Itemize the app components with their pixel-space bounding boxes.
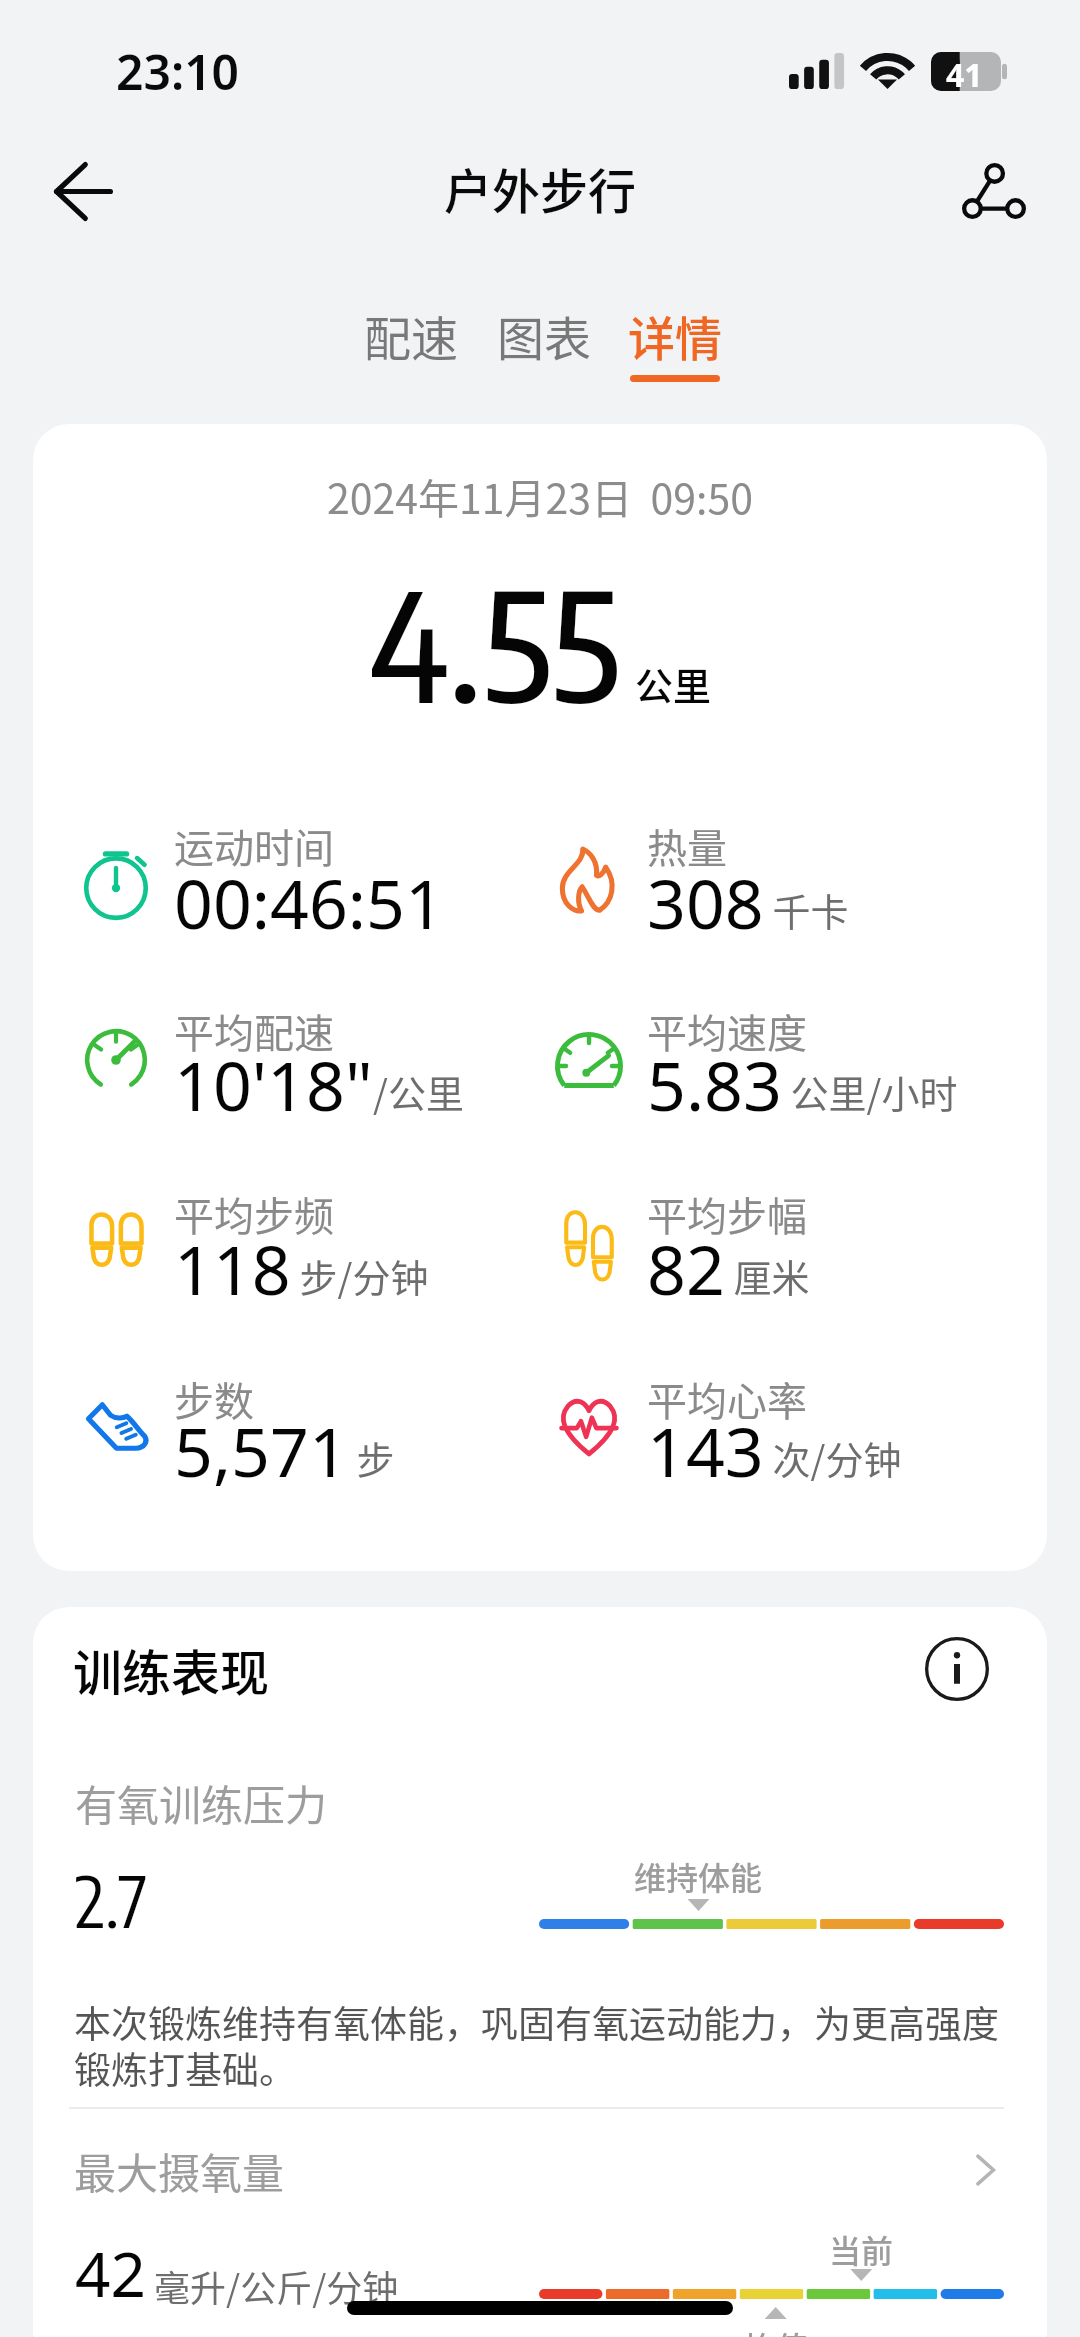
staticText: 本次锻炼维持有氧体能，巩固有氧运动能力，为更高强度锻炼打基础。 xyxy=(74,1995,1029,2095)
staticText: 步数 xyxy=(174,1370,254,1428)
staticText: 41 xyxy=(946,53,983,92)
staticText: 步/分钟 xyxy=(291,1248,429,1303)
staticText: 23:10 xyxy=(116,39,240,104)
staticText: 42 xyxy=(75,2231,146,2315)
staticText: 5.83 xyxy=(647,1038,782,1131)
staticText: 82 xyxy=(647,1222,725,1315)
staticText: 308 xyxy=(647,856,764,949)
staticText: 户外步行 xyxy=(444,153,637,223)
staticText: /公里 xyxy=(373,1064,464,1119)
staticText: 训练表现 xyxy=(73,1634,270,1705)
staticText: 平均配速 xyxy=(174,1002,334,1060)
button[interactable]: 最大摄氧量 xyxy=(74,2135,1006,2205)
staticText: 热量 xyxy=(647,817,727,875)
button[interactable]: 图表 xyxy=(479,291,609,392)
staticText: 配速 xyxy=(364,301,458,369)
staticText: 运动时间 xyxy=(174,817,334,875)
staticText: 最大摄氧量 xyxy=(74,2140,285,2201)
staticText: 平均步频 xyxy=(174,1185,334,1243)
staticText: 公里/小时 xyxy=(782,1064,958,1119)
staticText: 厘米 xyxy=(725,1248,810,1303)
staticText: 平均速度 xyxy=(647,1002,807,1060)
staticText: 平均步幅 xyxy=(647,1185,807,1243)
staticText: 4.55 xyxy=(369,548,621,736)
staticText: 详情 xyxy=(628,301,722,369)
staticText: 步 xyxy=(348,1430,395,1485)
staticText: 5,571 xyxy=(174,1404,348,1497)
button[interactable]: Back xyxy=(36,144,130,238)
staticText: 10'18" xyxy=(174,1038,373,1131)
staticText: 千卡 xyxy=(764,882,849,937)
staticText: 维持体能 xyxy=(608,1853,788,1899)
staticText: 118 xyxy=(174,1222,291,1315)
staticText: 143 xyxy=(647,1404,764,1497)
staticText: 毫升/公斤/分钟 xyxy=(146,2260,399,2312)
staticText: 当前 xyxy=(771,2226,951,2272)
staticText: 次/分钟 xyxy=(764,1430,902,1485)
staticText: 有氧训练压力 xyxy=(75,1772,328,1833)
staticText: 00:46:51 xyxy=(174,856,444,949)
staticText: 图表 xyxy=(497,301,591,369)
button[interactable]: 配速 xyxy=(346,291,476,392)
staticText: 平均心率 xyxy=(647,1370,807,1428)
staticText: 均值 xyxy=(686,2323,866,2337)
button[interactable]: Info xyxy=(912,1624,1002,1714)
button[interactable]: Share xyxy=(948,149,1040,241)
staticText: 公里 xyxy=(635,656,712,711)
staticText: 2.7 xyxy=(75,1856,148,1943)
staticText: 2024年11月23日 09:50 xyxy=(33,466,1047,525)
button[interactable]: 详情 xyxy=(610,291,740,392)
